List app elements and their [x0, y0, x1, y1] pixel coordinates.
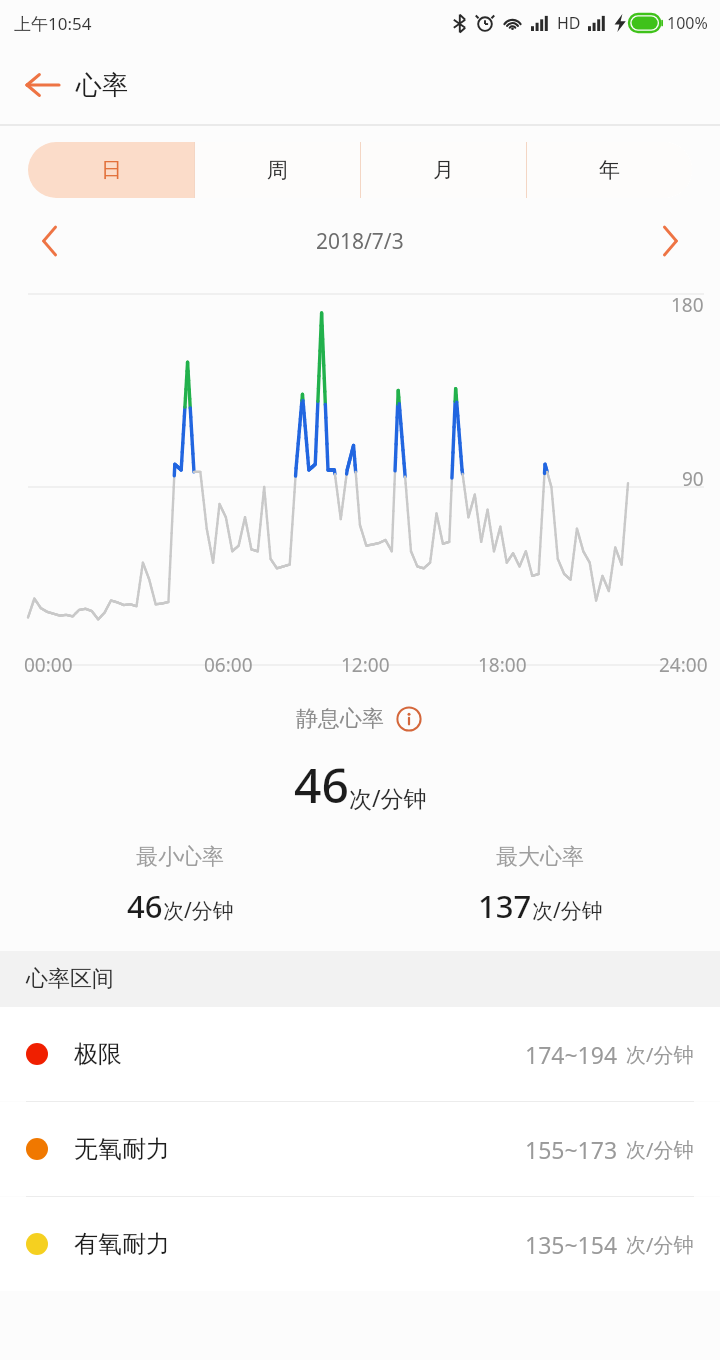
staticText: HD	[557, 12, 581, 34]
staticText: 月	[433, 157, 454, 183]
staticText: 137	[478, 885, 532, 927]
button[interactable]: Next day	[648, 219, 692, 263]
staticText: 155~173	[525, 1134, 618, 1165]
staticText: 次/分钟	[626, 1041, 694, 1068]
staticText: 12:00	[341, 652, 390, 678]
staticText: 周	[267, 157, 288, 183]
staticText: 2018/7/3	[316, 227, 404, 256]
staticText: 年	[599, 157, 620, 183]
staticText: 次/分钟	[626, 1136, 694, 1163]
staticText: 100%	[667, 12, 708, 34]
staticText: 次/分钟	[626, 1231, 694, 1258]
button[interactable]: 月	[360, 142, 526, 198]
staticText: 心率	[76, 69, 128, 102]
staticText: 135~154	[525, 1229, 618, 1260]
button[interactable]: 年	[526, 142, 692, 198]
staticText: 有氧耐力	[74, 1229, 170, 1259]
staticText: 180	[671, 292, 704, 318]
staticText: 心率区间	[26, 965, 114, 993]
button[interactable]: Back	[14, 57, 70, 113]
button[interactable]: Info about resting heart rate	[394, 704, 424, 734]
staticText: 极限	[74, 1039, 122, 1069]
staticText: 174~194	[525, 1039, 618, 1070]
staticText: 90	[682, 466, 704, 492]
button[interactable]: 无氧耐力	[0, 1102, 720, 1196]
button[interactable]: 极限	[0, 1007, 720, 1101]
staticText: 18:00	[478, 652, 527, 678]
button[interactable]: Previous day	[28, 219, 72, 263]
button[interactable]: 日	[28, 142, 194, 198]
staticText: 静息心率	[296, 705, 384, 733]
button[interactable]: 周	[194, 142, 360, 198]
staticText: 无氧耐力	[74, 1134, 170, 1164]
staticText: 06:00	[204, 652, 253, 678]
staticText: 次/分钟	[349, 782, 427, 813]
staticText: 24:00	[659, 652, 708, 678]
staticText: 次/分钟	[163, 896, 234, 925]
staticText: 46	[294, 752, 349, 817]
staticText: 上午10:54	[14, 12, 92, 35]
staticText: 00:00	[24, 652, 73, 678]
staticText: 日	[101, 157, 122, 183]
staticText: 次/分钟	[532, 896, 603, 925]
button[interactable]: 有氧耐力	[0, 1197, 720, 1291]
staticText: 最大心率	[496, 843, 584, 871]
staticText: 最小心率	[136, 843, 224, 871]
staticText: 46	[127, 885, 163, 927]
